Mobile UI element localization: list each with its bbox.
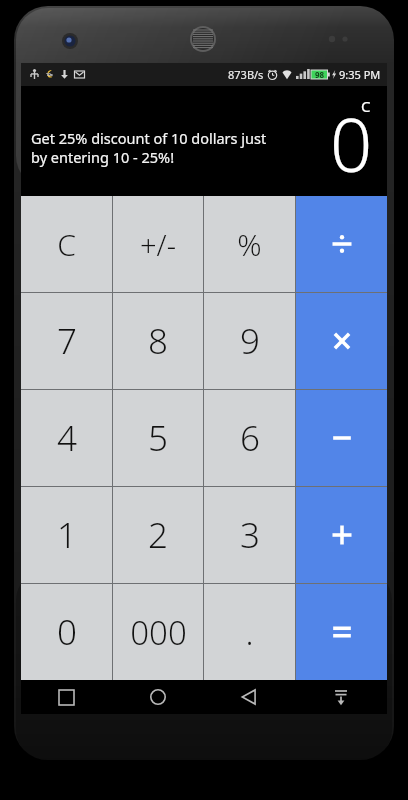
- staticText: 9:35 PM: [339, 67, 381, 82]
- button[interactable]: 1: [21, 487, 112, 583]
- button[interactable]: Divide: [296, 196, 387, 292]
- button[interactable]: Hide navigation bar: [295, 680, 387, 714]
- button[interactable]: 000: [113, 584, 203, 680]
- button[interactable]: 3: [204, 487, 295, 583]
- staticText: 9: [240, 317, 260, 365]
- staticText: +/-: [140, 225, 176, 264]
- staticText: 2: [148, 511, 168, 559]
- staticText: 000: [130, 610, 187, 655]
- other: Equals: [325, 615, 359, 649]
- button[interactable]: 9: [204, 293, 295, 389]
- button[interactable]: Recent apps: [21, 680, 112, 714]
- staticText: Get 25% discount of 10 dollars just by e…: [31, 128, 281, 167]
- staticText: 10x: [46, 72, 53, 77]
- button[interactable]: C: [21, 196, 112, 292]
- button[interactable]: 4: [21, 390, 112, 486]
- button[interactable]: 5: [113, 390, 203, 486]
- other: Add: [325, 518, 359, 552]
- button[interactable]: 7: [21, 293, 112, 389]
- staticText: %: [237, 224, 262, 265]
- button[interactable]: Multiply: [296, 293, 387, 389]
- staticText: C: [361, 96, 371, 116]
- staticText: 0: [330, 93, 373, 194]
- button[interactable]: +/-: [113, 196, 203, 292]
- button[interactable]: Add: [296, 487, 387, 583]
- other: Divide: [325, 227, 359, 261]
- button[interactable]: %: [204, 196, 295, 292]
- button[interactable]: Subtract: [296, 390, 387, 486]
- staticText: 0: [57, 608, 77, 656]
- staticText: 3: [240, 511, 260, 559]
- other: Multiply: [325, 324, 359, 358]
- staticText: 4: [57, 414, 77, 462]
- staticText: 6: [240, 414, 260, 462]
- staticText: 1: [57, 511, 77, 559]
- other: Subtract: [325, 421, 359, 455]
- button[interactable]: .: [204, 584, 295, 680]
- button[interactable]: 0: [21, 584, 112, 680]
- staticText: 98: [315, 69, 325, 80]
- staticText: 873B/s: [228, 67, 264, 82]
- staticText: 8: [148, 317, 168, 365]
- staticText: 5: [148, 414, 168, 462]
- staticText: C: [57, 224, 76, 265]
- staticText: .: [245, 610, 254, 655]
- button[interactable]: Home: [112, 680, 203, 714]
- button[interactable]: 2: [113, 487, 203, 583]
- staticText: 7: [57, 317, 77, 365]
- button[interactable]: Equals: [296, 584, 387, 680]
- button[interactable]: 8: [113, 293, 203, 389]
- button[interactable]: Back: [203, 680, 295, 714]
- button[interactable]: 6: [204, 390, 295, 486]
